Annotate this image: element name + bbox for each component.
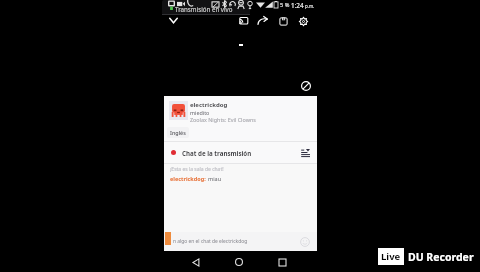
button[interactable]: electrickdog xyxy=(169,101,313,123)
button[interactable]: n algo en el chat de electrickdog xyxy=(164,232,317,251)
staticText: electrickdog xyxy=(190,101,228,109)
button[interactable]: Recent apps xyxy=(272,252,292,272)
staticText: 5 % xyxy=(280,1,290,9)
button[interactable]: Chat de la transmisión xyxy=(164,142,317,163)
button[interactable]: Emotes xyxy=(298,235,312,249)
button[interactable]: Save xyxy=(275,13,291,29)
staticText: 1:24 xyxy=(291,1,304,10)
button[interactable]: Cast xyxy=(235,13,251,29)
button[interactable]: Blocked xyxy=(298,78,314,94)
button[interactable]: Minimize player xyxy=(165,12,182,29)
staticText: Zoolax Nights: Evil Clowns xyxy=(190,116,256,123)
staticText: DU Recorder xyxy=(408,250,474,264)
staticText: miedito xyxy=(190,109,210,116)
staticText: n algo en el chat de electrickdog xyxy=(173,238,248,245)
staticText: Inglés xyxy=(170,129,186,136)
staticText: p.m. xyxy=(305,3,315,9)
button[interactable]: Back xyxy=(186,252,206,272)
staticText: electrickdog: xyxy=(170,175,206,182)
button[interactable]: Settings xyxy=(295,13,311,29)
staticText: ¡Esta es la sala de chat! xyxy=(170,166,224,173)
button[interactable]: Share xyxy=(255,13,271,29)
staticText: miau xyxy=(208,175,222,182)
staticText: Chat de la transmisión xyxy=(182,149,252,157)
button[interactable]: Home xyxy=(229,252,249,272)
button[interactable]: Inglés xyxy=(167,127,189,138)
button[interactable]: Chat settings xyxy=(299,147,311,159)
staticText: Transmisión en vivo xyxy=(175,5,233,13)
staticText: Live xyxy=(381,250,401,263)
